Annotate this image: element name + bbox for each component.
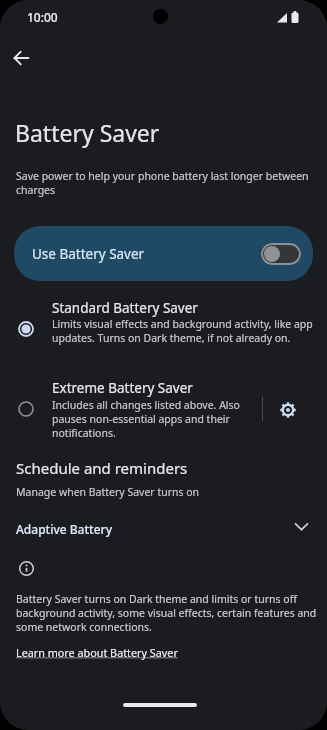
staticText: Schedule and reminders	[16, 458, 188, 478]
button[interactable]	[261, 243, 301, 265]
staticText: Save power to help your phone battery la…	[16, 169, 309, 197]
staticText: Battery Saver turns on Dark theme and li…	[16, 592, 317, 634]
button[interactable]: Standard Battery Saver	[0, 292, 327, 352]
staticText: Extreme Battery Saver	[52, 379, 193, 397]
button[interactable]: Schedule and reminders	[0, 450, 327, 502]
staticText: Standard Battery Saver	[52, 299, 198, 317]
staticText: 10:00	[27, 9, 58, 25]
button[interactable]: Extreme Battery Saver	[0, 372, 327, 444]
staticText: Includes all changes listed above. Also …	[52, 398, 240, 440]
staticText: Use Battery Saver	[32, 245, 145, 263]
button[interactable]: Adaptive Battery	[0, 508, 327, 544]
staticText: Limits visual effects and background act…	[52, 317, 313, 345]
button[interactable]: Use Battery Saver	[14, 226, 313, 281]
button[interactable]: Learn more about Battery Saver	[16, 645, 178, 660]
button[interactable]	[6, 43, 36, 73]
staticText: Battery Saver	[15, 117, 160, 148]
staticText: Adaptive Battery	[16, 521, 112, 537]
button[interactable]	[273, 395, 303, 425]
staticText: Manage when Battery Saver turns on	[16, 485, 200, 499]
